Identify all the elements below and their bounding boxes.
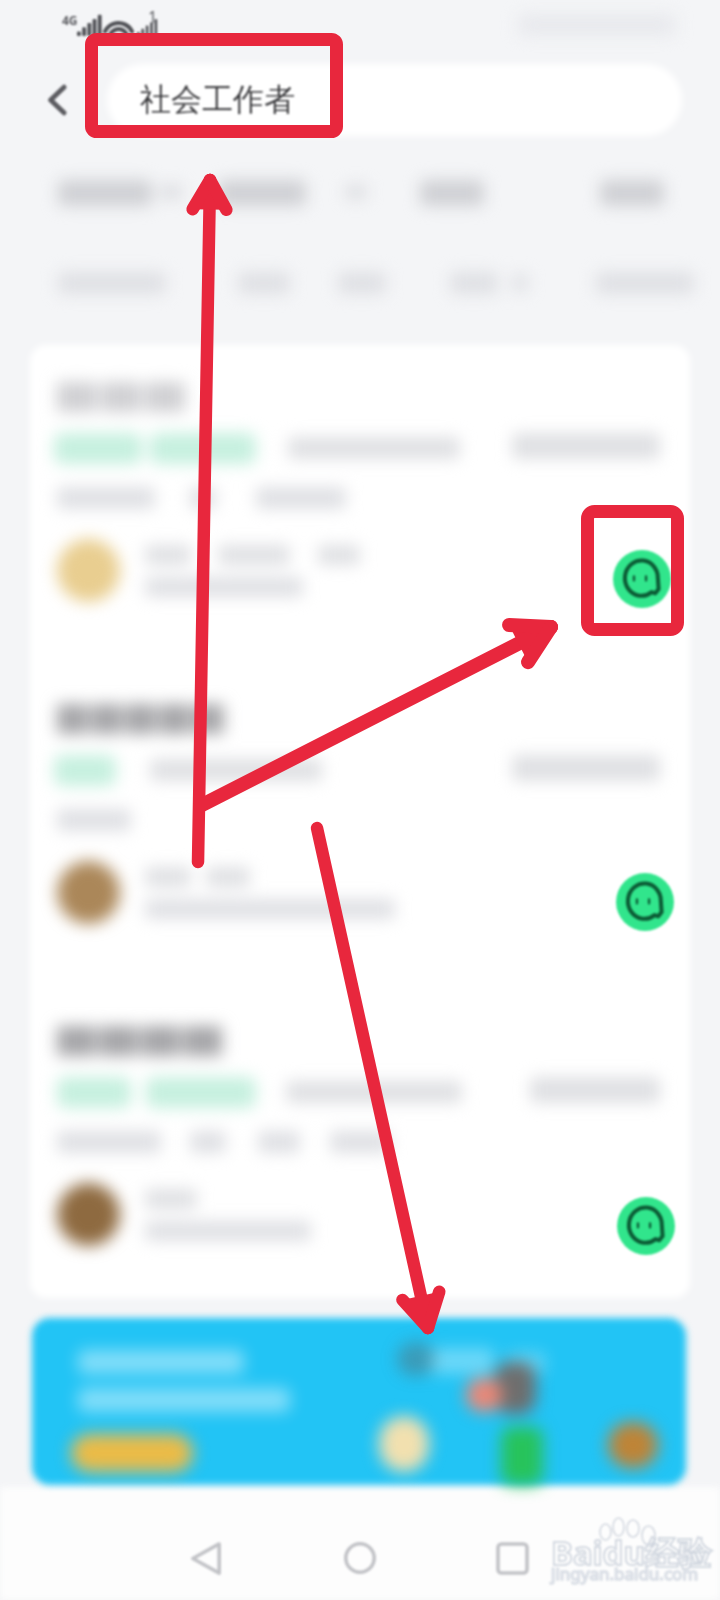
button[interactable]: Chat: [616, 873, 674, 931]
button[interactable]: Chat: [613, 550, 671, 608]
staticText: 社会工作者: [140, 80, 295, 119]
staticText: jingyan.baidu.com: [551, 1562, 699, 1585]
button[interactable]: Recent apps: [472, 1518, 552, 1598]
staticText: 1: [148, 6, 158, 28]
staticText: 4G: [62, 12, 78, 28]
button[interactable]: Back: [166, 1518, 246, 1598]
staticText: Baidu经验: [551, 1530, 711, 1575]
button[interactable]: [32, 1318, 686, 1485]
button[interactable]: Back: [24, 67, 90, 133]
button[interactable]: Home: [320, 1518, 400, 1598]
button[interactable]: [107, 64, 682, 136]
button[interactable]: Chat: [617, 1197, 675, 1255]
